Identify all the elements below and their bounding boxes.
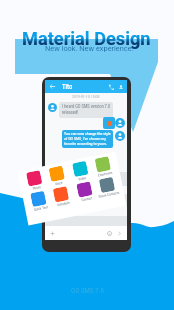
staticText: New look. New experience. <box>45 44 134 53</box>
staticText: Share Contacts <box>98 191 120 199</box>
staticText: Emoticons <box>97 171 113 177</box>
staticText: 2019-01-10 10:08 <box>72 94 100 99</box>
button[interactable]: Back <box>49 83 56 90</box>
staticText: Video <box>78 176 86 181</box>
staticText: GO SMS 7.0 <box>71 287 104 295</box>
button[interactable]: Voice <box>45 165 70 188</box>
staticText: Tito <box>62 83 73 91</box>
button[interactable]: Emoticons <box>91 155 116 178</box>
staticText: Photo <box>32 185 41 191</box>
staticText: Contact <box>81 196 93 202</box>
button[interactable]: Emoji <box>107 231 112 236</box>
button[interactable]: Contact <box>72 180 98 203</box>
button[interactable]: Add attachment <box>50 231 55 236</box>
button[interactable]: Photo <box>17 152 126 225</box>
button[interactable]: Call <box>108 84 114 90</box>
staticText: Quick Text <box>33 205 49 212</box>
button[interactable]: Schedule <box>49 185 74 208</box>
button[interactable]: Contact <box>118 84 124 90</box>
staticText: Schedule <box>57 201 70 207</box>
button[interactable]: Photo <box>22 169 47 192</box>
staticText: Material Design <box>22 28 151 49</box>
button[interactable]: Send <box>117 231 122 236</box>
button[interactable]: Quick Text <box>26 190 51 213</box>
staticText: You can now change the style of GO SMS, … <box>64 131 111 146</box>
button[interactable]: Video <box>68 160 93 183</box>
staticText: I heard GO SMS version 7.0 released! <box>62 104 111 115</box>
button[interactable]: Share Contacts <box>95 176 120 199</box>
staticText: Voice <box>54 181 63 186</box>
